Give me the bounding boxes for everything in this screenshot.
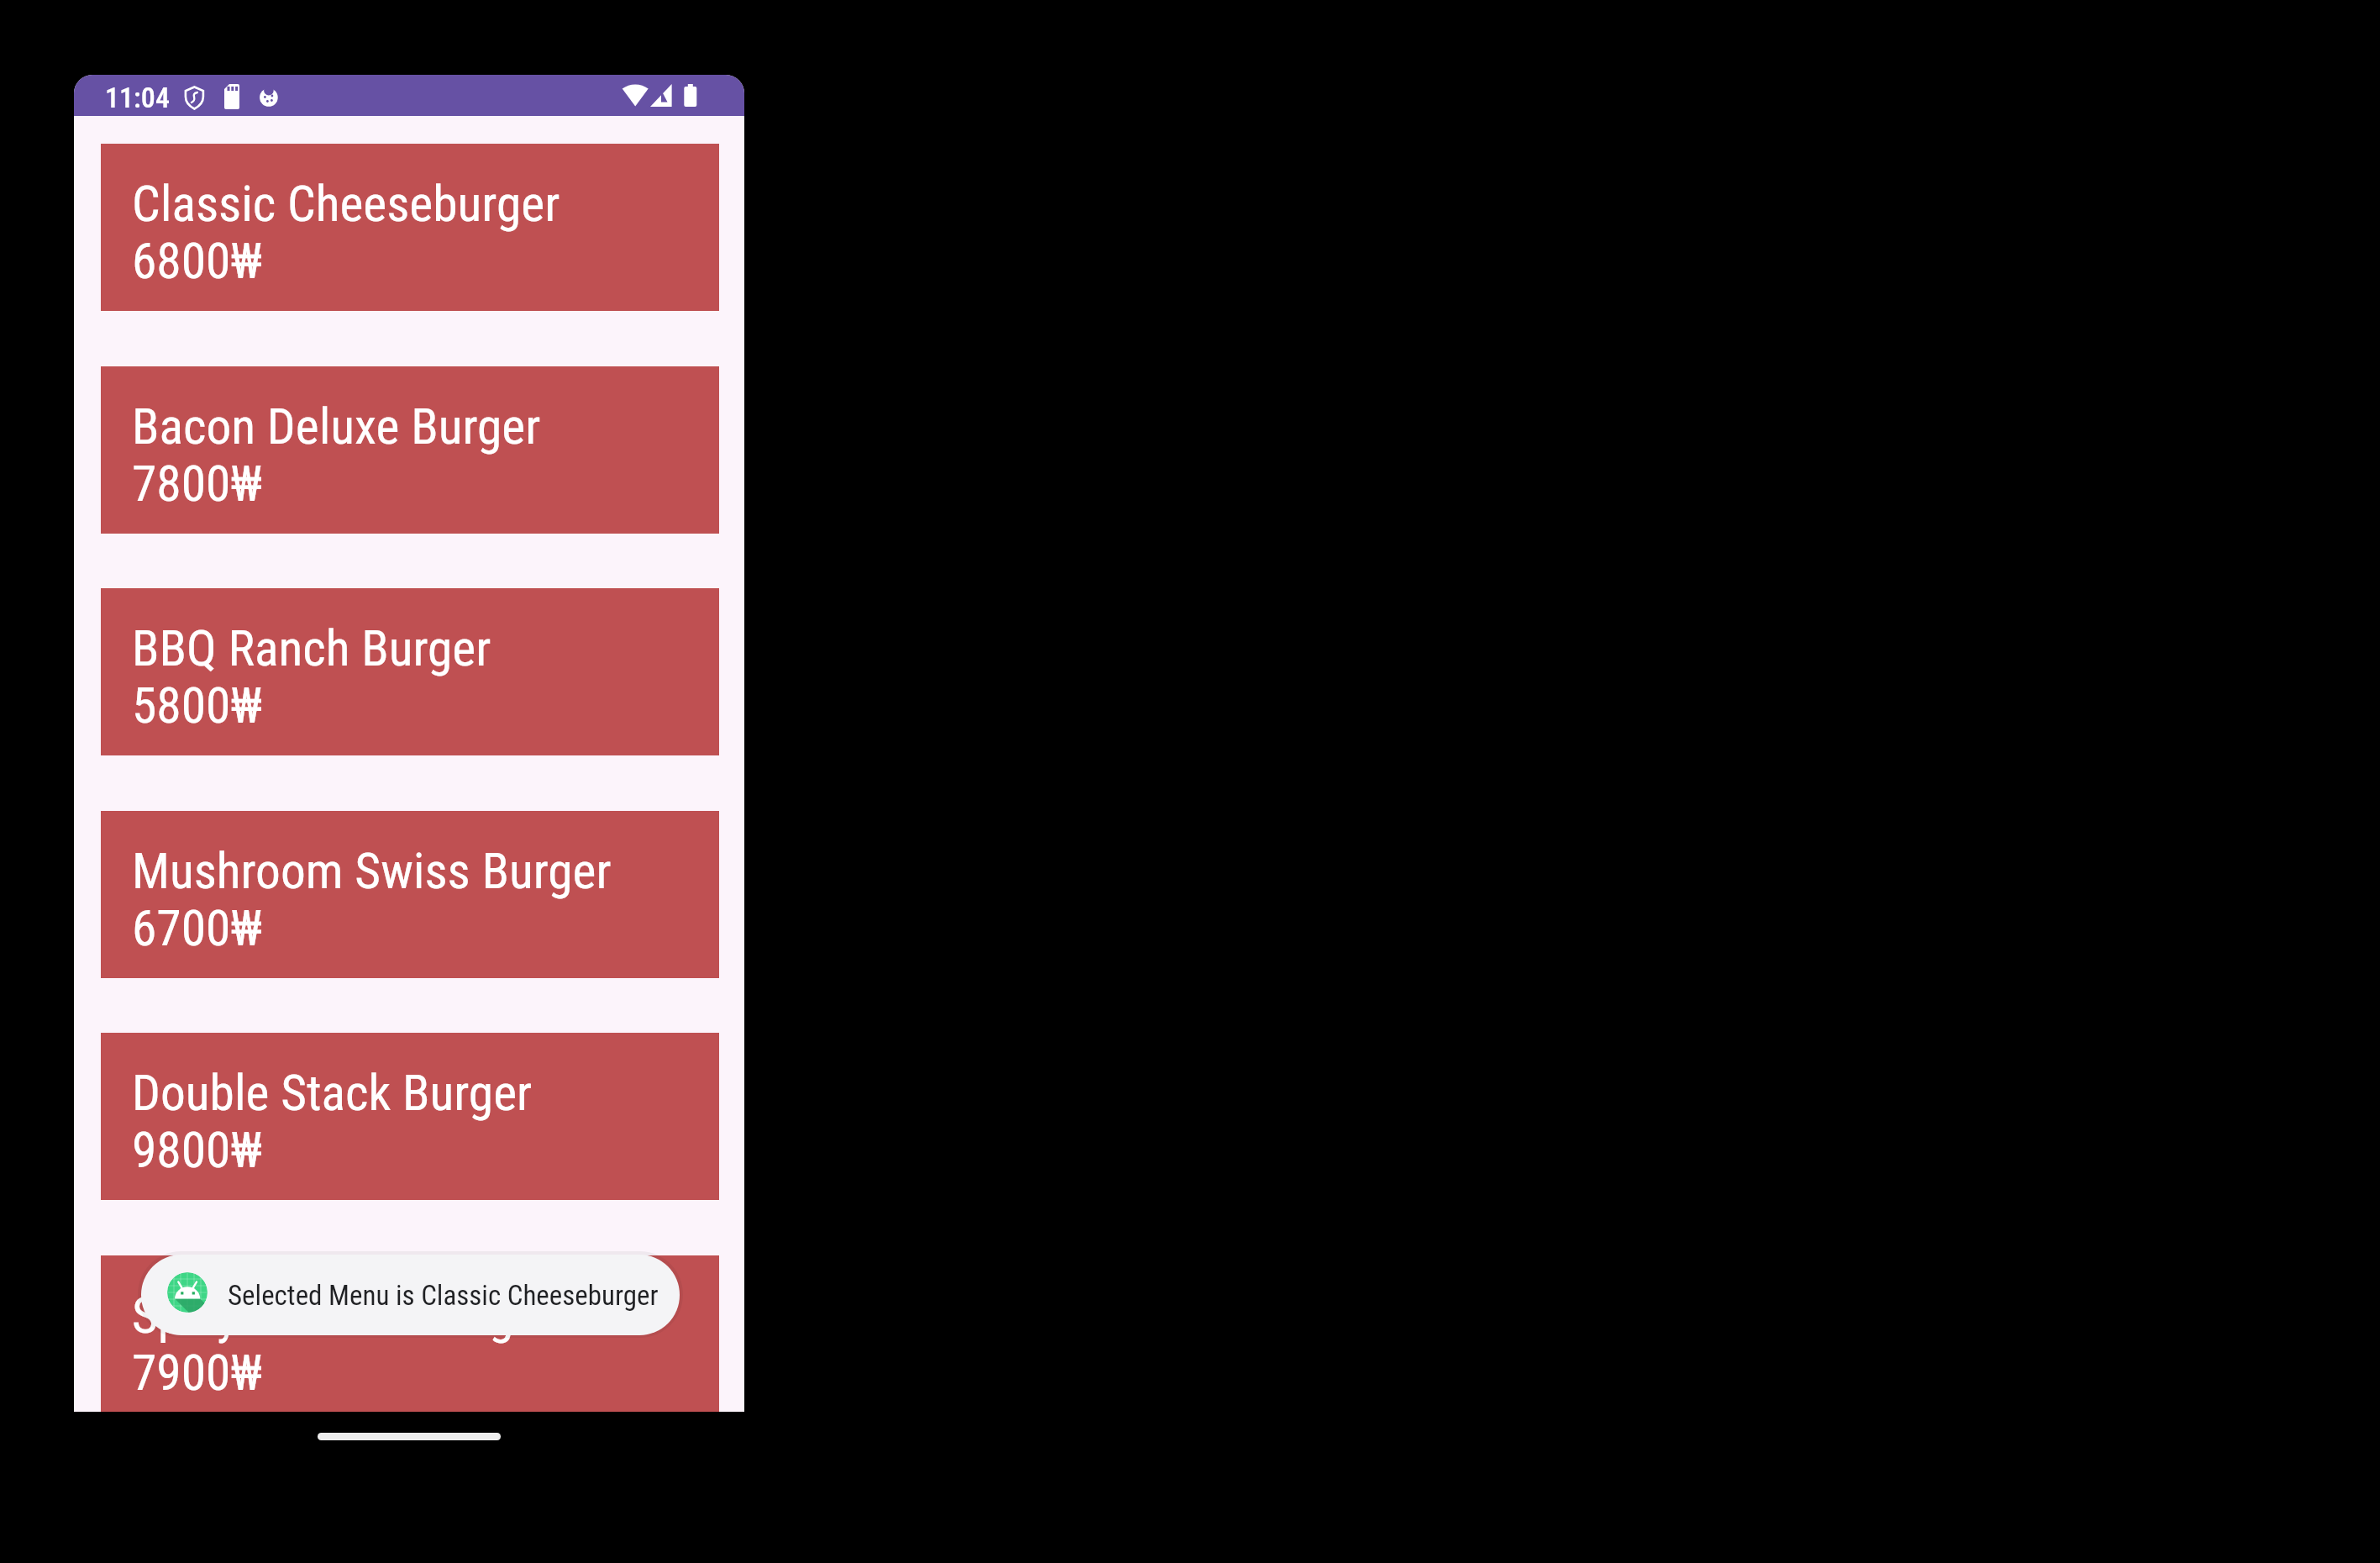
staticText: Classic Cheeseburger 6800₩ xyxy=(132,175,560,290)
button[interactable]: Classic Cheeseburger 6800₩ xyxy=(101,144,719,311)
staticText: Double Stack Burger 9800₩ xyxy=(132,1064,533,1179)
staticText: BBQ Ranch Burger 5800₩ xyxy=(132,619,491,734)
button[interactable]: Spicy Sriracha Burger 7900₩ xyxy=(101,1255,719,1412)
button[interactable]: BBQ Ranch Burger 5800₩ xyxy=(101,588,719,755)
staticText: Spicy Sriracha Burger 7900₩ xyxy=(132,1287,553,1402)
staticText: Selected Menu is Classic Cheeseburger xyxy=(228,1279,659,1312)
button[interactable]: Double Stack Burger 9800₩ xyxy=(101,1033,719,1200)
button[interactable]: Bacon Deluxe Burger 7800₩ xyxy=(101,366,719,534)
staticText: 11:04 xyxy=(105,81,170,114)
staticText: Bacon Deluxe Burger 7800₩ xyxy=(132,397,541,513)
button[interactable]: Mushroom Swiss Burger 6700₩ xyxy=(101,811,719,978)
staticText: Mushroom Swiss Burger 6700₩ xyxy=(132,842,612,957)
